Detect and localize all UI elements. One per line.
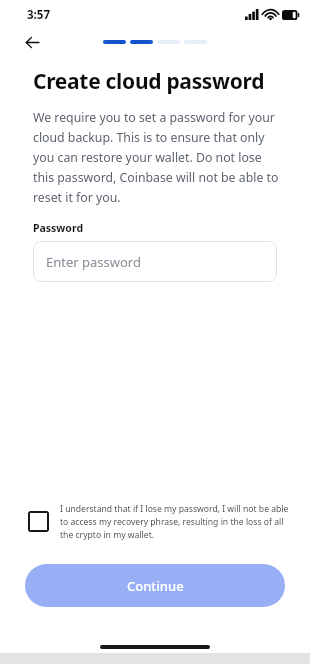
button[interactable]: I understand checkbox (28, 503, 292, 540)
staticText: Password (33, 221, 84, 235)
staticText: We require you to set a password for you… (33, 109, 284, 205)
staticText: 3:57 (27, 7, 50, 23)
staticText: Create cloud password (33, 67, 265, 96)
button[interactable]: Back (19, 29, 45, 55)
button[interactable]: Enter password (33, 241, 277, 282)
button[interactable]: Continue (25, 564, 285, 607)
other: I understand checkbox (28, 511, 49, 532)
staticText: Enter password (46, 253, 141, 271)
staticText: I understand that if I lose my password,… (60, 503, 292, 540)
staticText: Continue (127, 577, 184, 595)
